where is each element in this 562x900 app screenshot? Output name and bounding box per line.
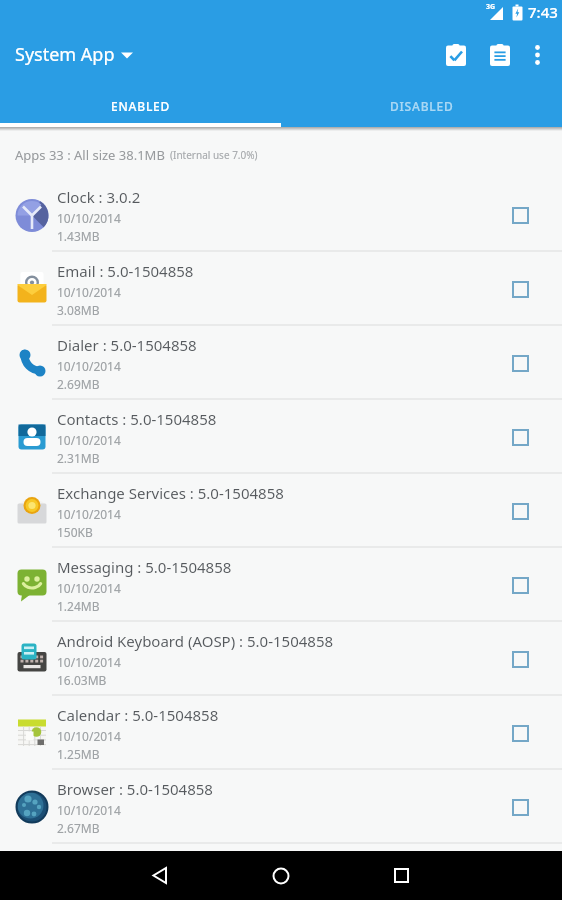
staticText: 150KB — [57, 524, 93, 540]
staticText: 3G — [486, 2, 496, 12]
staticText: Apps 33 : All size 38.1MB — [15, 146, 165, 164]
button[interactable]: Messaging : 5.0-1504858 — [0, 548, 562, 622]
button[interactable] — [512, 725, 529, 742]
button[interactable] — [241, 851, 321, 900]
button[interactable] — [512, 577, 529, 594]
staticText: 10/10/2014 — [57, 506, 121, 522]
staticText: 10/10/2014 — [57, 654, 121, 670]
button[interactable]: Dialer : 5.0-1504858 — [0, 326, 562, 400]
staticText: 10/10/2014 — [57, 284, 121, 300]
button[interactable]: Exchange Services : 5.0-1504858 — [0, 474, 562, 548]
staticText: 2.69MB — [57, 376, 100, 392]
button[interactable] — [120, 851, 200, 900]
staticText: 10/10/2014 — [57, 432, 121, 448]
button[interactable] — [512, 799, 529, 816]
button[interactable] — [361, 851, 441, 900]
staticText: 10/10/2014 — [57, 728, 121, 744]
staticText: 2.31MB — [57, 450, 100, 466]
button[interactable] — [512, 281, 529, 298]
button[interactable] — [434, 31, 478, 79]
staticText: 1.43MB — [57, 228, 100, 244]
button[interactable]: System App — [15, 42, 133, 67]
button[interactable]: DISABLED — [281, 85, 562, 127]
staticText: Messaging : 5.0-1504858 — [57, 557, 232, 577]
button[interactable]: Contacts : 5.0-1504858 — [0, 400, 562, 474]
button[interactable]: ENABLED — [0, 85, 281, 127]
button[interactable] — [512, 651, 529, 668]
staticText: 16.03MB — [57, 672, 107, 688]
button[interactable]: Clock : 3.0.2 — [0, 178, 562, 252]
staticText: Browser : 5.0-1504858 — [57, 779, 213, 799]
staticText: Clock : 3.0.2 — [57, 187, 141, 207]
staticText: Exchange Services : 5.0-1504858 — [57, 483, 284, 503]
staticText: 2.67MB — [57, 820, 100, 836]
button[interactable] — [512, 355, 529, 372]
staticText: 1.24MB — [57, 598, 100, 614]
button[interactable]: Android Keyboard (AOSP) : 5.0-1504858 — [0, 622, 562, 696]
staticText: Calendar : 5.0-1504858 — [57, 705, 219, 725]
button[interactable] — [512, 503, 529, 520]
button[interactable]: Email : 5.0-1504858 — [0, 252, 562, 326]
staticText: 10/10/2014 — [57, 358, 121, 374]
staticText: ENABLED — [111, 98, 171, 114]
staticText: 10/10/2014 — [57, 580, 121, 596]
button[interactable] — [522, 31, 552, 79]
staticText: DISABLED — [390, 98, 454, 114]
staticText: 7:43 — [528, 2, 558, 22]
button[interactable] — [512, 207, 529, 224]
button[interactable]: Calendar : 5.0-1504858 — [0, 696, 562, 770]
staticText: Android Keyboard (AOSP) : 5.0-1504858 — [57, 631, 334, 651]
staticText: Dialer : 5.0-1504858 — [57, 335, 197, 355]
staticText: 1.25MB — [57, 746, 100, 762]
staticText: (Internal use 7.0%) — [170, 148, 258, 162]
button[interactable]: Browser : 5.0-1504858 — [0, 770, 562, 844]
staticText: Contacts : 5.0-1504858 — [57, 409, 217, 429]
button[interactable] — [512, 429, 529, 446]
staticText: System App — [15, 42, 115, 67]
staticText: 3.08MB — [57, 302, 100, 318]
staticText: Email : 5.0-1504858 — [57, 261, 194, 281]
button[interactable] — [478, 31, 522, 79]
staticText: 10/10/2014 — [57, 802, 121, 818]
staticText: 10/10/2014 — [57, 210, 121, 226]
